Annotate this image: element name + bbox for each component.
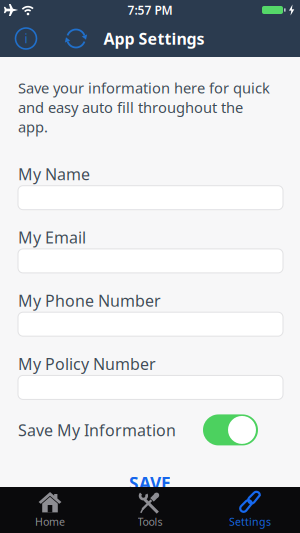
button[interactable]: Home	[0, 487, 100, 533]
button[interactable]: Save My Information, on	[203, 414, 258, 445]
staticText: Save your information here for quick and…	[18, 78, 270, 136]
staticText: My Policy Number	[18, 353, 156, 374]
staticText: My Name	[18, 163, 90, 185]
staticText: Home	[35, 514, 65, 529]
staticText: i	[24, 30, 27, 46]
staticText: 7:57 PM	[127, 2, 172, 18]
button[interactable]: Info	[14, 26, 38, 50]
staticText: SAVE	[129, 471, 171, 494]
button[interactable]: Sync	[63, 25, 89, 51]
button[interactable]: My Name	[18, 186, 283, 210]
staticText: Save My Information	[18, 419, 176, 440]
staticText: My Email	[18, 227, 86, 248]
staticText: Tools	[137, 514, 162, 529]
staticText: My Phone Number	[18, 290, 161, 311]
button[interactable]: My Phone Number	[18, 312, 283, 336]
button[interactable]: Tools	[100, 487, 200, 533]
staticText: App Settings	[103, 28, 204, 49]
button[interactable]: My Policy Number	[18, 375, 283, 399]
button[interactable]: My Email	[18, 249, 283, 273]
button[interactable]: Settings	[200, 487, 300, 533]
staticText: Settings	[229, 514, 271, 529]
button[interactable]: SAVE	[129, 471, 171, 494]
